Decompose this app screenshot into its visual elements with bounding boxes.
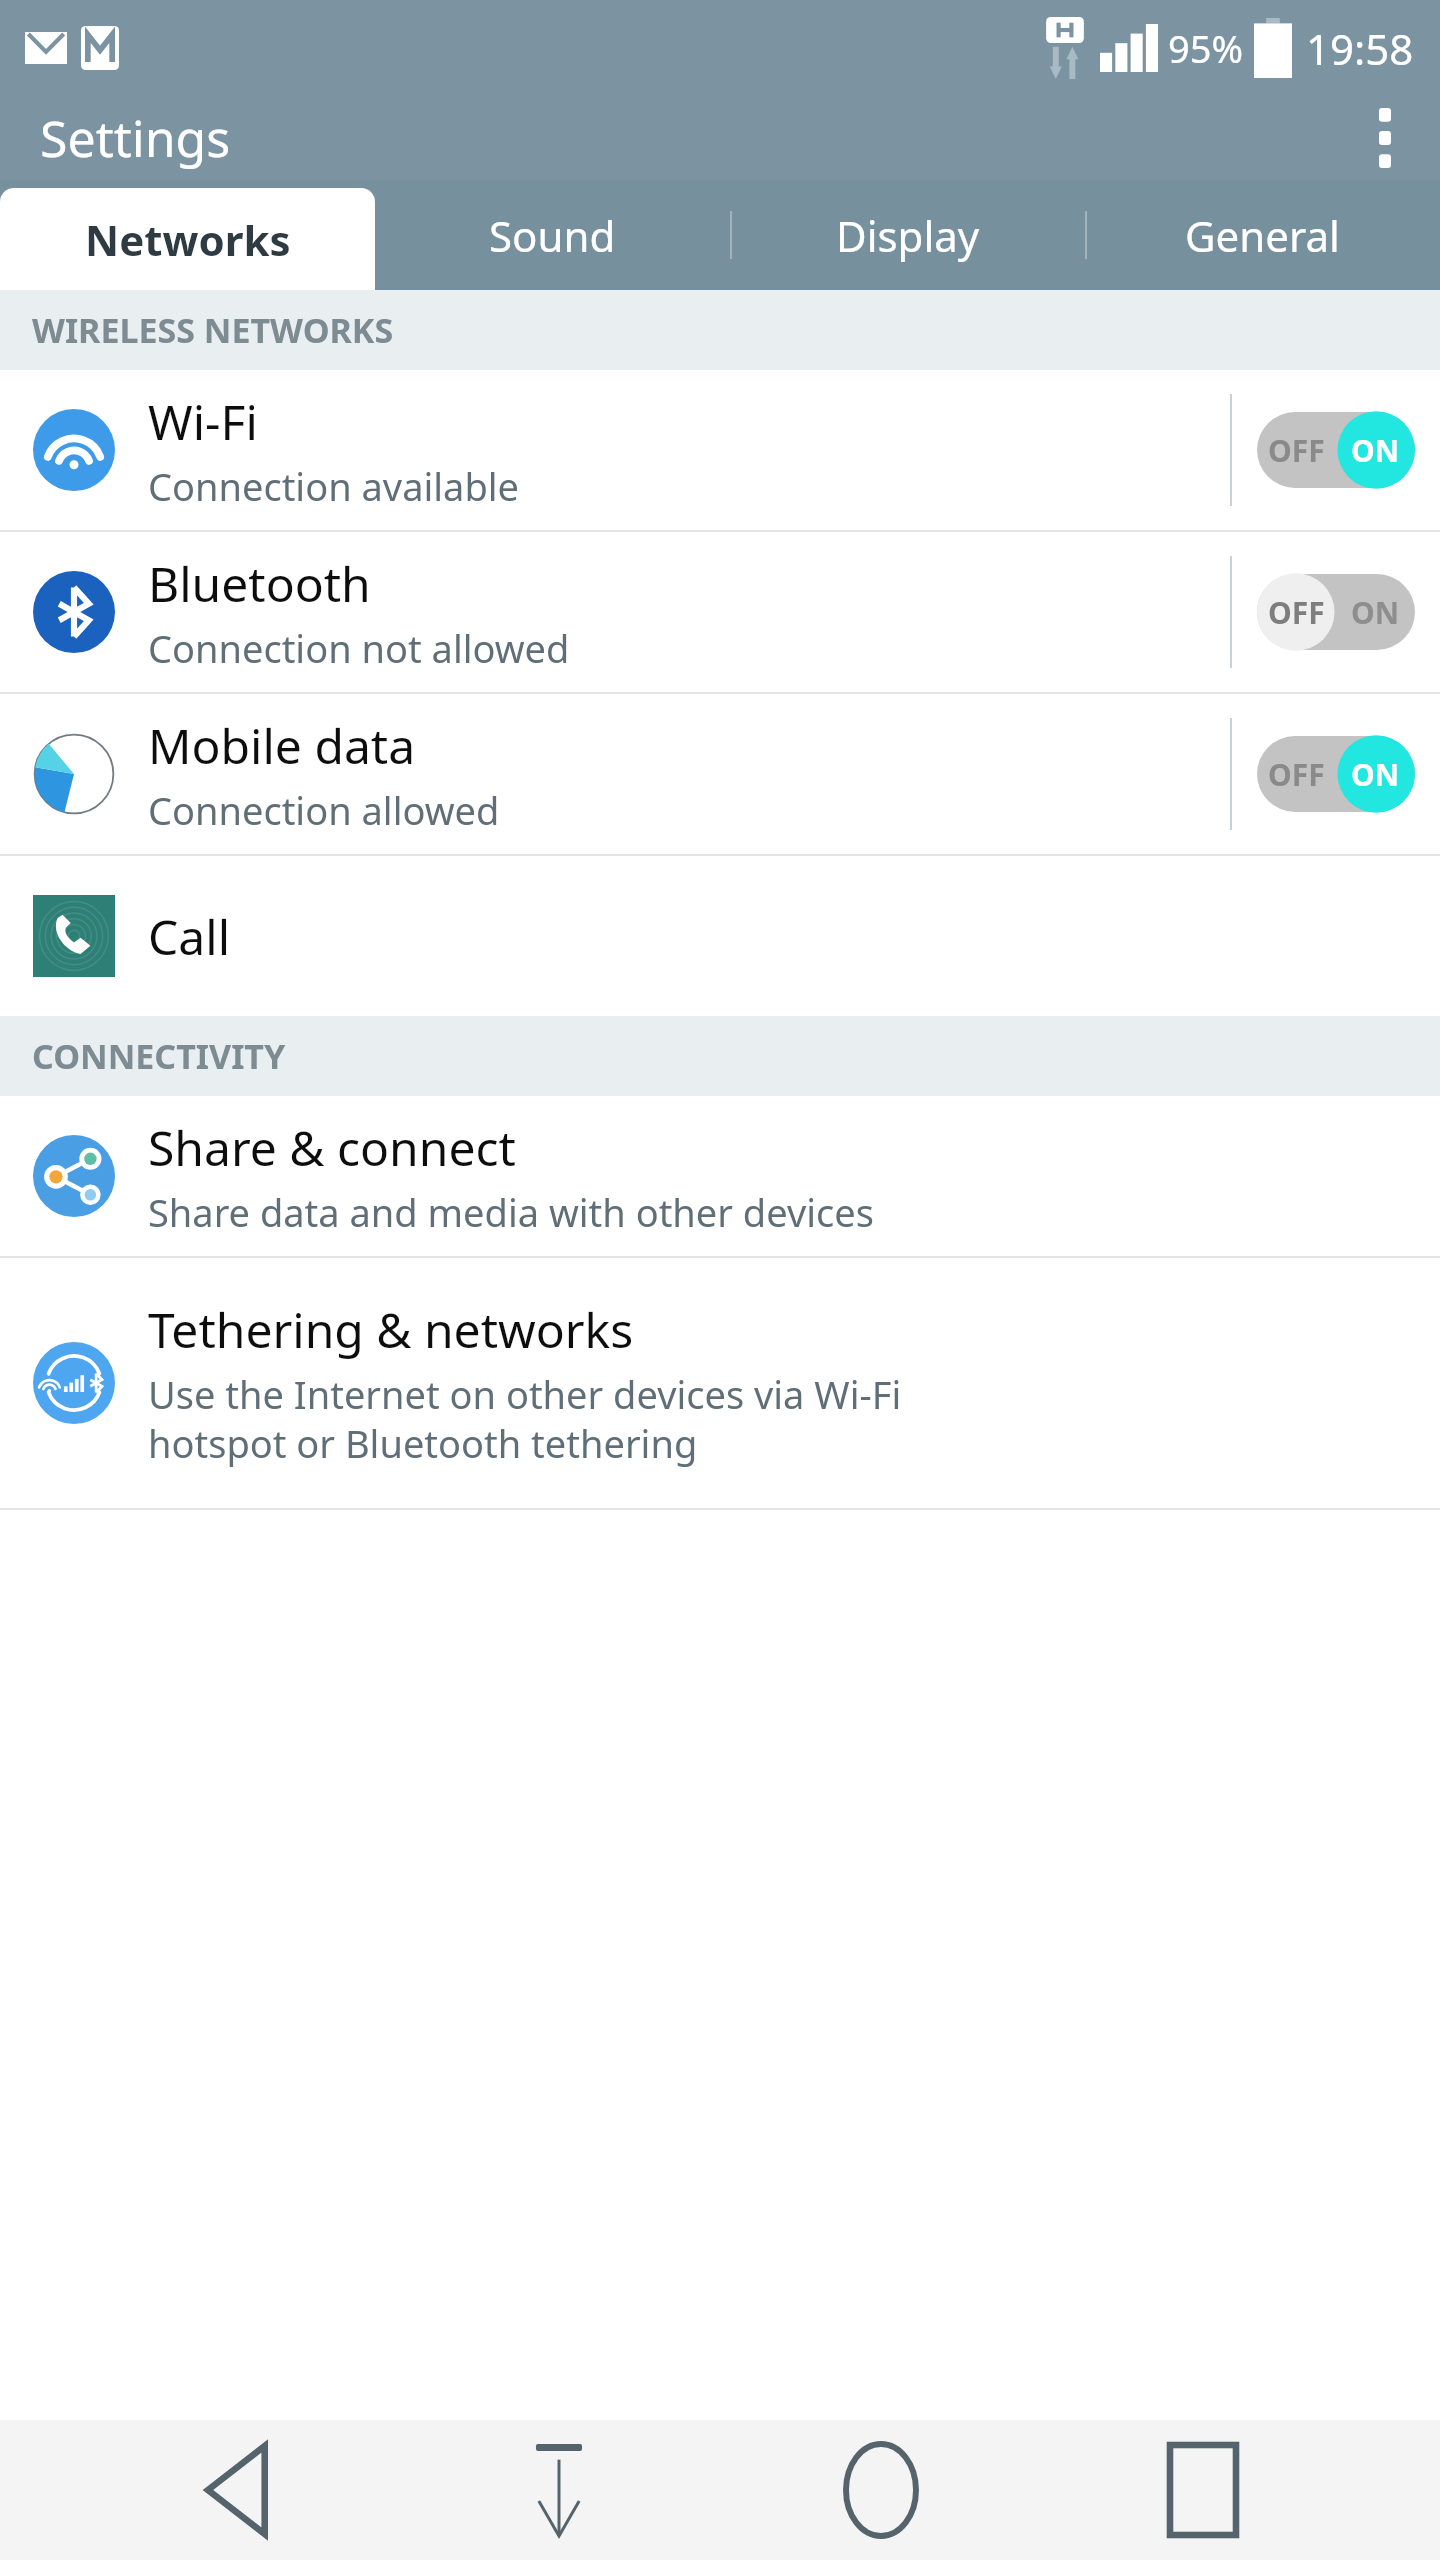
button[interactable]: Mobile data [0, 694, 1440, 854]
staticText: Connection available [148, 460, 519, 512]
staticText: WIRELESS NETWORKS [32, 307, 394, 353]
staticText: ON [1351, 754, 1400, 795]
button[interactable]: Bluetooth [0, 532, 1440, 692]
button[interactable]: Networks [0, 188, 375, 290]
button[interactable]: Recent apps [1118, 2420, 1288, 2560]
staticText: Display [836, 207, 980, 264]
staticText: Connection allowed [148, 784, 500, 836]
button[interactable]: General [1085, 180, 1440, 290]
button[interactable]: Back [152, 2420, 322, 2560]
button[interactable]: OFF [1232, 694, 1440, 854]
staticText: Share & connect [148, 1115, 516, 1180]
staticText: Mobile data [148, 713, 416, 778]
staticText: Sound [489, 207, 616, 264]
staticText: Wi-Fi [148, 389, 258, 454]
staticText: Settings [40, 104, 231, 172]
staticText: OFF [1268, 430, 1325, 471]
staticText: OFF [1268, 754, 1325, 795]
button[interactable]: OFF [1232, 370, 1440, 530]
staticText: 95% [1168, 22, 1244, 74]
button[interactable]: Share & connect [0, 1096, 1440, 1256]
staticText: 19:58 [1306, 20, 1414, 77]
button[interactable]: Hide keyboard [474, 2420, 644, 2560]
staticText: CONNECTIVITY [32, 1033, 286, 1079]
button[interactable]: Sound [375, 180, 730, 290]
staticText: Use the Internet on other devices via Wi… [148, 1368, 902, 1469]
button[interactable]: Call [0, 856, 1440, 1016]
staticText: ON [1351, 430, 1400, 471]
staticText: Call [148, 904, 231, 969]
staticText: Tethering & networks [148, 1297, 634, 1362]
staticText: OFF [1268, 592, 1325, 633]
button[interactable]: Tethering & networks [0, 1258, 1440, 1508]
staticText: Share data and media with other devices [148, 1186, 874, 1238]
button[interactable]: Wi-Fi [0, 370, 1440, 530]
button[interactable]: More options [1330, 95, 1440, 180]
button[interactable]: OFF [1232, 532, 1440, 692]
staticText: ON [1351, 592, 1400, 633]
staticText: General [1185, 207, 1340, 264]
staticText: Networks [85, 211, 291, 268]
staticText: Connection not allowed [148, 622, 570, 674]
button[interactable]: Display [730, 180, 1085, 290]
staticText: Bluetooth [148, 551, 371, 616]
button[interactable]: Home [796, 2420, 966, 2560]
